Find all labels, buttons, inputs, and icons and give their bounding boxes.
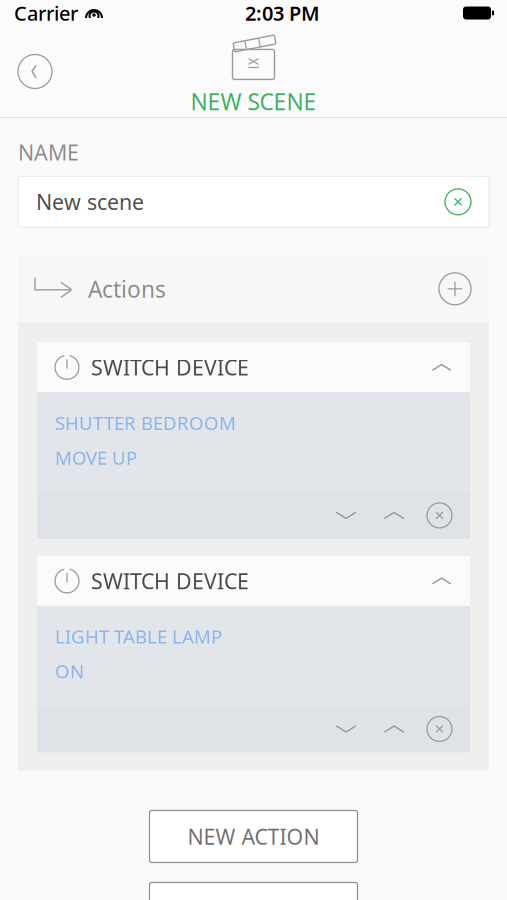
staticText: NEW ACTION <box>187 822 319 851</box>
staticText: SHUTTER BEDROOM <box>55 410 236 435</box>
button[interactable]: Clear name <box>445 189 471 215</box>
button[interactable]: Move action down <box>331 714 361 744</box>
button[interactable]: NEW ACTION <box>149 810 357 862</box>
staticText: NAME <box>18 138 79 166</box>
staticText: SWITCH DEVICE <box>91 353 249 381</box>
button[interactable]: Add action <box>439 273 489 305</box>
staticText: SWITCH DEVICE <box>91 567 249 595</box>
staticText: MOVE UP <box>55 445 137 470</box>
button[interactable]: Move action down <box>331 500 361 530</box>
button[interactable]: Delete action <box>427 503 452 528</box>
button[interactable]: SWITCH DEVICE <box>37 342 470 392</box>
button[interactable]: SWITCH DEVICE <box>37 556 470 606</box>
button[interactable]: Move action up <box>379 714 409 744</box>
staticText: LIGHT TABLE LAMP <box>55 624 222 649</box>
button[interactable]: TEST <box>149 882 357 900</box>
button[interactable]: Move action up <box>379 500 409 530</box>
staticText: 2:03 PM <box>245 0 320 26</box>
button[interactable]: Back <box>0 48 60 94</box>
staticText: Carrier <box>14 0 78 26</box>
staticText: Actions <box>88 274 166 304</box>
staticText: New scene <box>36 188 144 216</box>
staticText: NEW SCENE <box>190 86 316 116</box>
button[interactable]: Delete action <box>427 716 452 741</box>
staticText: ON <box>55 659 84 683</box>
